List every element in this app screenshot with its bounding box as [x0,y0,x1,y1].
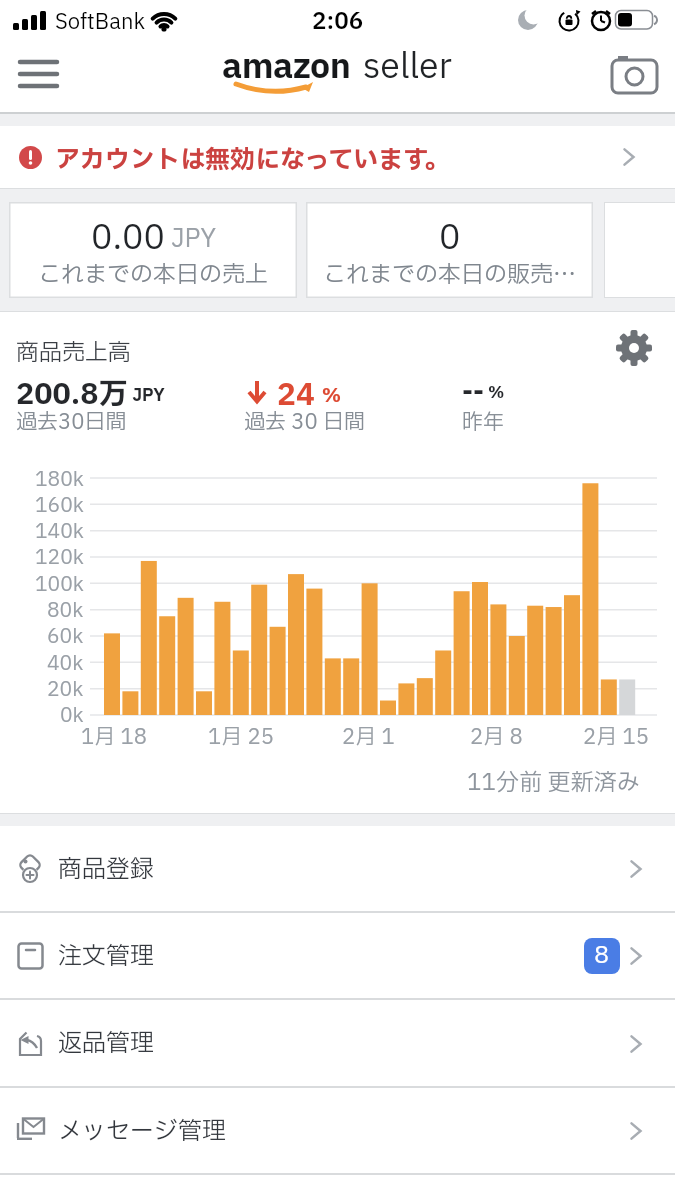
button[interactable]: 0.00 [9,202,297,298]
staticText: 160k [35,491,84,517]
staticText: 24 [277,373,315,418]
staticText: 過去30日間 [16,407,127,438]
staticText: 0 [439,213,461,255]
button[interactable] [602,48,667,98]
staticText: 2月 15 [583,722,649,750]
staticText: JPY [165,221,216,258]
staticText: メッセージ管理 [58,1114,226,1150]
staticText: 商品売上高 [16,336,131,370]
staticText: これまでの本日の売上 [38,258,268,288]
staticText: amazon [222,42,351,93]
staticText: 1月 25 [208,722,274,750]
staticText: 120k [35,543,84,569]
staticText: 昨年 [462,407,504,438]
staticText: 60k [47,622,84,648]
staticText: -- [462,373,484,412]
staticText: 180k [35,465,84,491]
staticText: 返品管理 [58,1026,154,1062]
staticText: 140k [35,517,84,543]
staticText: seller [363,42,452,93]
staticText: 40k [47,649,84,675]
staticText: アカウントは無効になっています。 [55,142,450,179]
button[interactable]: アカウントは無効になっています。 [0,126,675,189]
staticText: 1月 18 [81,722,147,750]
staticText: 0k [60,701,84,727]
staticText: 80k [47,596,84,622]
button[interactable] [605,321,665,376]
button[interactable]: 商品登録 [0,826,675,913]
staticText: 商品登録 [58,852,154,888]
staticText: 100k [35,570,84,596]
staticText: 2月 1 [342,722,395,750]
button[interactable]: 返品管理 [0,1000,675,1088]
staticText: 20k [47,675,84,701]
staticText: 過去 30 日間 [244,407,365,438]
staticText: % [484,381,505,405]
staticText: 0.00 [91,213,165,264]
staticText: 注文管理 [58,939,154,975]
button[interactable]: 0 [306,202,593,298]
staticText: 11分前 更新済み [467,766,640,796]
staticText: JPY [128,383,165,408]
staticText: 200.8万 [16,373,128,416]
staticText: 2:06 [312,5,364,35]
button[interactable] [8,48,68,98]
button[interactable]: メッセージ管理 [0,1088,675,1175]
button[interactable]: 注文管理 [0,913,675,1000]
staticText: SoftBank [55,7,145,38]
staticText: 2月 8 [470,722,523,750]
staticText: これまでの本日の販売… [323,258,576,288]
staticText: 8 [594,938,610,974]
staticText: % [317,382,342,410]
